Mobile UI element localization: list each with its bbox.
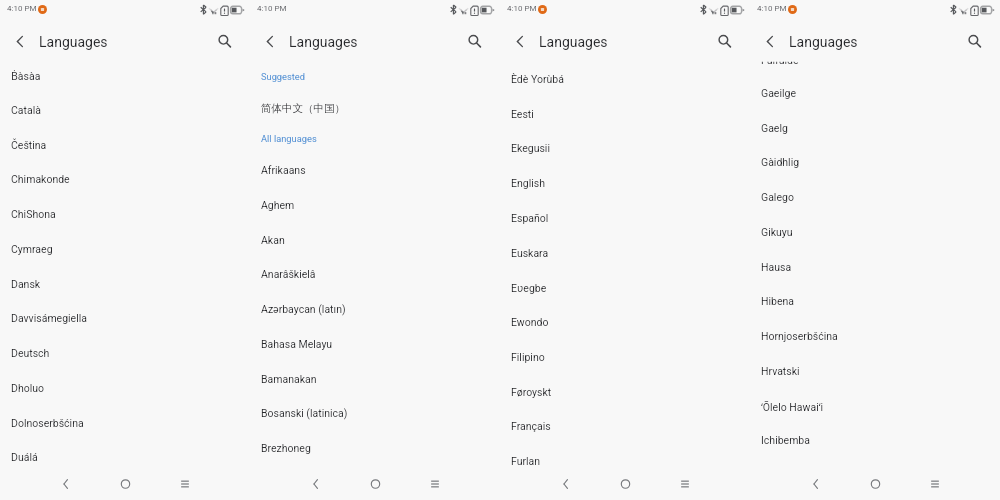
- button[interactable]: Navigate up: [508, 29, 532, 53]
- button[interactable]: Euskara: [500, 247, 750, 262]
- button[interactable]: 简体中文（中国）: [250, 102, 500, 117]
- button[interactable]: Français: [500, 420, 750, 435]
- button[interactable]: Back: [303, 472, 327, 496]
- button[interactable]: Back: [53, 472, 77, 496]
- button[interactable]: Aghem: [250, 199, 500, 214]
- staticText: Cymraeg: [11, 243, 53, 255]
- button[interactable]: Bosanski (latinica): [250, 407, 500, 422]
- staticText: Hrvatski: [761, 365, 800, 377]
- staticText: Gikuyu: [761, 226, 793, 238]
- staticText: Duálá: [11, 451, 38, 463]
- button[interactable]: Davvisámegiella: [0, 312, 250, 327]
- button[interactable]: Español: [500, 212, 750, 227]
- button[interactable]: Čeština: [0, 139, 250, 154]
- button[interactable]: Hausa: [750, 261, 1000, 276]
- button[interactable]: Back: [553, 472, 577, 496]
- button[interactable]: Search: [961, 29, 987, 55]
- button[interactable]: Hornjoserbšćina: [750, 330, 1000, 345]
- staticText: Brezhoneg: [261, 442, 311, 454]
- button[interactable]: Ewondo: [500, 316, 750, 331]
- button[interactable]: Èdè Yorùbá: [500, 73, 750, 88]
- button[interactable]: Català: [0, 104, 250, 119]
- button[interactable]: All languages: [250, 133, 500, 146]
- staticText: All languages: [261, 133, 317, 144]
- staticText: 4:10 PM: [757, 4, 787, 13]
- staticText: Languages: [539, 34, 608, 50]
- button[interactable]: Brezhoneg: [250, 442, 500, 457]
- button[interactable]: Dolnoserbšćina: [0, 417, 250, 432]
- button[interactable]: Gikuyu: [750, 226, 1000, 241]
- button[interactable]: Hrvatski: [750, 365, 1000, 380]
- button[interactable]: Suggested: [250, 71, 500, 84]
- button[interactable]: Chimakonde: [0, 173, 250, 188]
- staticText: Ewondo: [511, 316, 549, 328]
- button[interactable]: Deutsch: [0, 347, 250, 362]
- staticText: Ḃàsàa: [11, 69, 41, 83]
- staticText: Deutsch: [11, 347, 50, 359]
- button[interactable]: Home: [613, 472, 637, 496]
- button[interactable]: ʻŌlelo Hawaiʻi: [750, 400, 1000, 415]
- button[interactable]: Dansk: [0, 278, 250, 293]
- staticText: Français: [511, 420, 551, 432]
- button[interactable]: Gaeilge: [750, 87, 1000, 102]
- button[interactable]: Navigate up: [258, 29, 282, 53]
- staticText: ChiShona: [11, 208, 56, 220]
- staticText: Hornjoserbšćina: [761, 330, 838, 342]
- button[interactable]: Recent apps: [923, 472, 947, 496]
- button[interactable]: Eʋegbe: [500, 281, 750, 296]
- button[interactable]: Recent apps: [673, 472, 697, 496]
- button[interactable]: Bahasa Melayu: [250, 338, 500, 353]
- button[interactable]: Duálá: [0, 451, 250, 466]
- button[interactable]: Ichibemba: [750, 434, 1000, 449]
- button[interactable]: Bamanakan: [250, 373, 500, 388]
- button[interactable]: Recent apps: [173, 472, 197, 496]
- button[interactable]: Navigate up: [8, 29, 32, 53]
- staticText: Chimakonde: [11, 173, 70, 185]
- button[interactable]: Home: [113, 472, 137, 496]
- button[interactable]: Ekegusii: [500, 142, 750, 157]
- button[interactable]: Filipino: [500, 351, 750, 366]
- staticText: Dolnoserbšćina: [11, 417, 84, 429]
- button[interactable]: Search: [211, 29, 237, 55]
- staticText: Ichibemba: [761, 434, 810, 446]
- button[interactable]: Dholuo: [0, 382, 250, 397]
- staticText: Eesti: [511, 108, 534, 120]
- button[interactable]: Search: [461, 29, 487, 55]
- button[interactable]: Galego: [750, 191, 1000, 206]
- button[interactable]: Gàidhlig: [750, 156, 1000, 171]
- button[interactable]: Eesti: [500, 108, 750, 123]
- button[interactable]: Azərbaycan (latın): [250, 303, 500, 318]
- staticText: Eʋegbe: [511, 281, 547, 295]
- staticText: Español: [511, 212, 549, 224]
- staticText: Languages: [289, 34, 358, 50]
- staticText: Dansk: [11, 278, 41, 290]
- staticText: Ekegusii: [511, 142, 550, 154]
- button[interactable]: Furlan: [500, 455, 750, 470]
- staticText: Fulfulde: [761, 54, 799, 66]
- button[interactable]: Gaelg: [750, 122, 1000, 137]
- staticText: ʻŌlelo Hawaiʻi: [761, 400, 824, 414]
- button[interactable]: Akan: [250, 234, 500, 249]
- button[interactable]: Home: [363, 472, 387, 496]
- button[interactable]: Cymraeg: [0, 243, 250, 258]
- button[interactable]: Fulfulde: [750, 54, 1000, 69]
- staticText: Dholuo: [11, 382, 44, 394]
- staticText: Euskara: [511, 247, 549, 259]
- staticText: Aghem: [261, 199, 295, 211]
- button[interactable]: Afrikaans: [250, 164, 500, 179]
- button[interactable]: Home: [863, 472, 887, 496]
- button[interactable]: English: [500, 177, 750, 192]
- button[interactable]: ChiShona: [0, 208, 250, 223]
- button[interactable]: Hibena: [750, 295, 1000, 310]
- button[interactable]: Search: [711, 29, 737, 55]
- button[interactable]: Back: [803, 472, 827, 496]
- staticText: 简体中文（中国）: [261, 102, 345, 115]
- button[interactable]: Navigate up: [758, 29, 782, 53]
- button[interactable]: Føroyskt: [500, 386, 750, 401]
- staticText: Galego: [761, 191, 794, 203]
- staticText: Gaelg: [761, 122, 788, 134]
- button[interactable]: Recent apps: [423, 472, 447, 496]
- button[interactable]: Ḃàsàa: [0, 69, 250, 84]
- staticText: Hausa: [761, 261, 792, 273]
- button[interactable]: Anarâškielâ: [250, 268, 500, 283]
